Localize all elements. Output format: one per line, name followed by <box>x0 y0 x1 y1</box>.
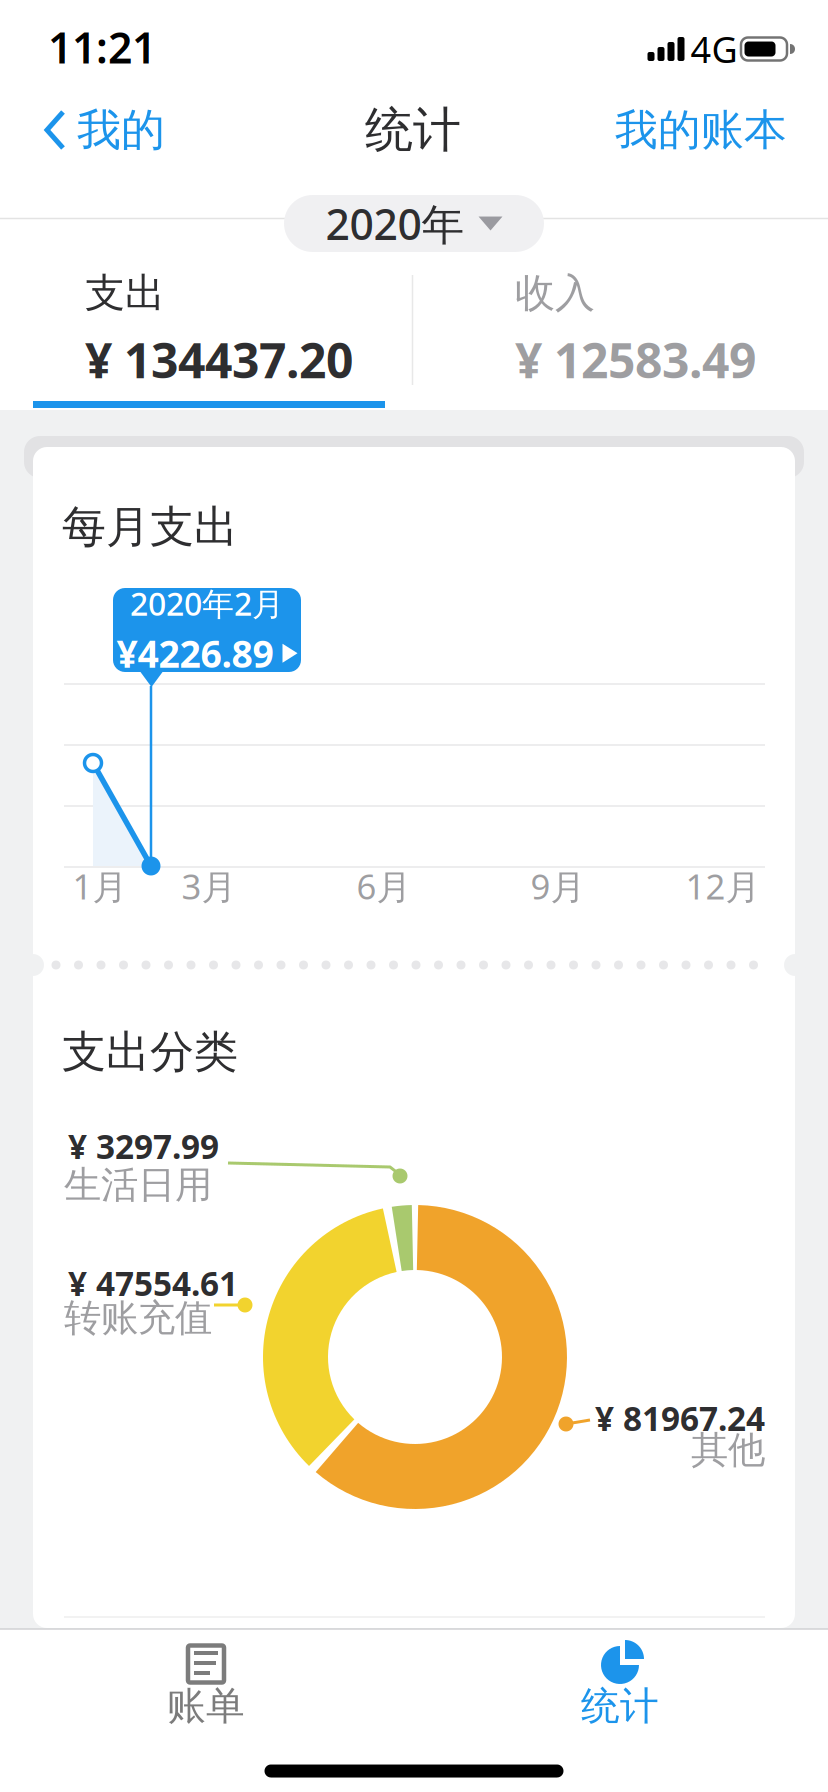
staticText: 收入 <box>515 269 595 318</box>
button[interactable]: 2020年 <box>284 195 544 252</box>
staticText: 生活日用 <box>64 1162 212 1208</box>
button[interactable]: 统计 <box>550 1634 690 1754</box>
staticText: 统计 <box>365 100 461 159</box>
staticText: ¥ 81967.24 <box>595 1396 765 1440</box>
staticText: 1月 <box>72 863 127 909</box>
staticText: 6月 <box>356 863 411 909</box>
staticText: 支出 <box>85 269 165 318</box>
staticText: 11:21 <box>48 19 156 75</box>
button[interactable]: 2020年2月 <box>113 582 301 678</box>
staticText: 统计 <box>581 1682 659 1730</box>
button[interactable]: 收入 <box>515 275 828 385</box>
staticText: 其他 <box>691 1427 765 1473</box>
staticText: 9月 <box>530 863 585 909</box>
staticText: 账单 <box>167 1682 245 1730</box>
staticText: 每月支出 <box>62 500 238 554</box>
staticText: 转账充值 <box>64 1295 212 1341</box>
staticText: ¥ 12583.49 <box>515 328 756 391</box>
staticText: 2020年2月 <box>130 582 284 624</box>
button[interactable]: 我的 <box>45 100 185 160</box>
button[interactable]: 支出 <box>85 275 415 385</box>
button[interactable]: 账单 <box>136 1634 276 1754</box>
staticText: 3月 <box>181 863 236 909</box>
staticText: ¥ 47554.61 <box>68 1261 238 1305</box>
staticText: 支出分类 <box>62 1025 238 1079</box>
staticText: 12月 <box>685 863 760 909</box>
button[interactable]: 我的账本 <box>547 100 787 160</box>
staticText: 我的账本 <box>615 104 787 156</box>
staticText: ¥ 3297.99 <box>68 1124 219 1168</box>
staticText: 4G <box>690 25 737 73</box>
staticText: 我的 <box>77 103 165 157</box>
staticText: ¥ 134437.20 <box>85 328 353 391</box>
staticText: 2020年 <box>325 195 464 252</box>
staticText: ¥4226.89 <box>116 628 273 678</box>
